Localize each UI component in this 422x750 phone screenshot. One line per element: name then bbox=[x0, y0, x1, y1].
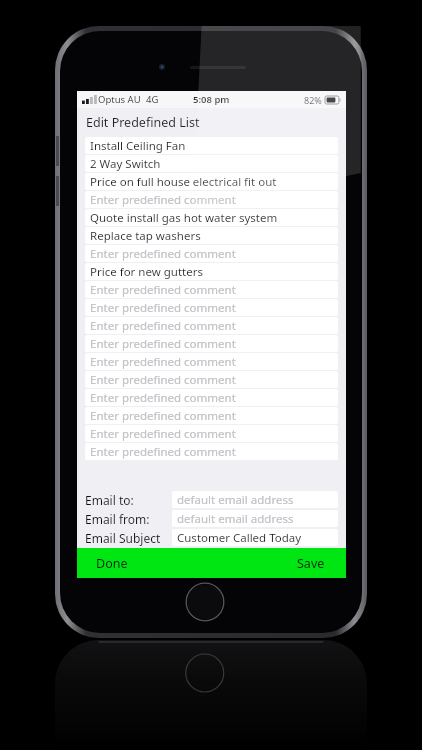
button[interactable]: Save bbox=[276, 548, 346, 578]
button[interactable]: Done bbox=[77, 548, 147, 578]
button[interactable]: Enter predefined comment bbox=[85, 191, 338, 208]
staticText: Quote install gas hot water system bbox=[90, 210, 278, 226]
button[interactable]: Price for new gutters bbox=[85, 263, 338, 280]
staticText: Enter predefined comment bbox=[90, 318, 236, 334]
button[interactable]: Email Subject bbox=[85, 529, 338, 546]
button[interactable]: 2 Way Switch bbox=[85, 155, 338, 172]
staticText: Enter predefined comment bbox=[90, 300, 236, 316]
staticText: Enter predefined comment bbox=[90, 408, 236, 424]
staticText: Enter predefined comment bbox=[90, 246, 236, 262]
button[interactable]: Install Ceiling Fan bbox=[85, 137, 338, 154]
staticText: Enter predefined comment bbox=[90, 192, 236, 208]
button[interactable]: Enter predefined comment bbox=[85, 371, 338, 388]
staticText: Enter predefined comment bbox=[90, 444, 236, 460]
staticText: 5:08 pm bbox=[193, 93, 230, 106]
button[interactable]: Replace tap washers bbox=[85, 227, 338, 244]
button[interactable]: Email to: bbox=[85, 491, 338, 508]
staticText: Enter predefined comment bbox=[90, 372, 236, 388]
staticText: Enter predefined comment bbox=[90, 390, 236, 406]
button[interactable]: Price on full house electrical fit out bbox=[85, 173, 338, 190]
staticText: 4G bbox=[146, 93, 159, 106]
staticText: Enter predefined comment bbox=[90, 426, 236, 442]
staticText: default email address bbox=[177, 511, 294, 527]
button[interactable]: Email from: bbox=[85, 510, 338, 527]
staticText: Save bbox=[297, 555, 325, 572]
button[interactable]: Enter predefined comment bbox=[85, 389, 338, 406]
button[interactable]: Enter predefined comment bbox=[85, 299, 338, 316]
staticText: Email Subject bbox=[85, 530, 161, 546]
staticText: Done bbox=[96, 555, 128, 572]
staticText: 2 Way Switch bbox=[90, 156, 161, 172]
staticText: Email to: bbox=[85, 492, 134, 508]
button[interactable]: Enter predefined comment bbox=[85, 407, 338, 424]
button[interactable]: Home bbox=[185, 582, 225, 622]
button[interactable]: Quote install gas hot water system bbox=[85, 209, 338, 226]
staticText: Install Ceiling Fan bbox=[90, 138, 186, 154]
staticText: Customer Called Today bbox=[177, 530, 302, 546]
staticText: 82% bbox=[304, 94, 322, 106]
staticText: Email from: bbox=[85, 511, 150, 527]
button[interactable]: Enter predefined comment bbox=[85, 353, 338, 370]
staticText: Price on full house electrical fit out bbox=[90, 174, 277, 190]
button[interactable]: Enter predefined comment bbox=[85, 317, 338, 334]
button[interactable]: Enter predefined comment bbox=[85, 443, 338, 460]
button[interactable]: Enter predefined comment bbox=[85, 335, 338, 352]
button[interactable]: Enter predefined comment bbox=[85, 245, 338, 262]
staticText: default email address bbox=[177, 492, 294, 508]
button[interactable]: Enter predefined comment bbox=[85, 425, 338, 442]
staticText: Enter predefined comment bbox=[90, 282, 236, 298]
staticText: Replace tap washers bbox=[90, 228, 201, 244]
staticText: Enter predefined comment bbox=[90, 336, 236, 352]
staticText: Enter predefined comment bbox=[90, 354, 236, 370]
button[interactable]: Enter predefined comment bbox=[85, 281, 338, 298]
staticText: Edit Predefined List bbox=[86, 114, 200, 131]
staticText: Optus AU bbox=[98, 93, 141, 106]
staticText: Price for new gutters bbox=[90, 264, 203, 280]
